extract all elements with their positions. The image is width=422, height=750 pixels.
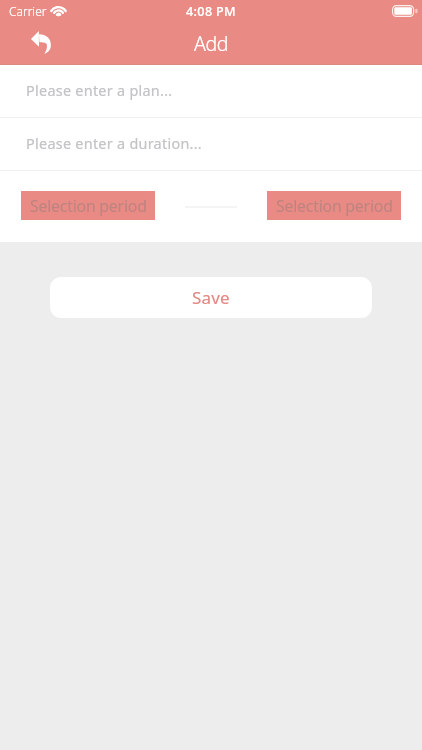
button[interactable]: Please enter a plan... — [0, 65, 422, 117]
button[interactable]: Back — [19, 25, 51, 54]
button[interactable]: Selection period — [267, 191, 401, 220]
button[interactable]: Please enter a duration... — [0, 118, 422, 170]
staticText: Please enter a plan... — [26, 81, 173, 101]
button[interactable]: Save — [50, 277, 372, 318]
staticText: Carrier — [9, 3, 47, 19]
button[interactable]: Selection period — [21, 191, 155, 220]
staticText: Selection period — [276, 195, 393, 217]
staticText: Add — [194, 30, 229, 57]
staticText: Please enter a duration... — [26, 134, 203, 154]
staticText: Selection period — [30, 195, 147, 217]
staticText: Save — [192, 286, 230, 309]
staticText: 4:08 PM — [186, 3, 237, 20]
